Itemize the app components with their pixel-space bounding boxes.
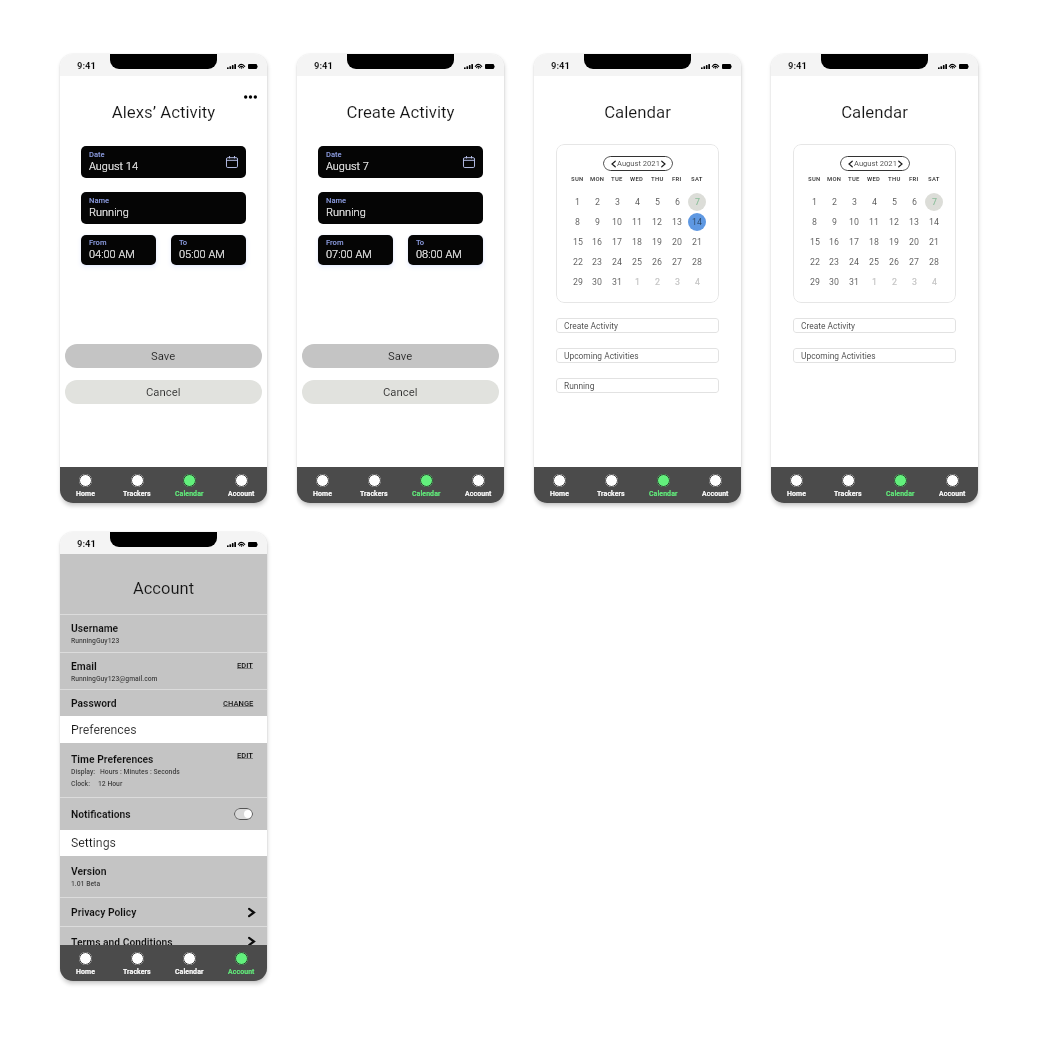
button[interactable]: 25: [864, 252, 884, 272]
button[interactable]: 14: [687, 212, 707, 232]
button[interactable]: Cancel: [302, 380, 499, 404]
button[interactable]: 4: [864, 192, 884, 212]
button[interactable]: Password: [60, 690, 267, 716]
button[interactable]: 7: [924, 192, 944, 212]
button[interactable]: 13: [667, 212, 687, 232]
button[interactable]: Trackers: [348, 467, 400, 503]
button[interactable]: From: [81, 235, 156, 265]
button[interactable]: Home: [60, 467, 111, 503]
button[interactable]: Trackers: [585, 467, 637, 503]
button[interactable]: 18: [864, 232, 884, 252]
button[interactable]: 9: [824, 212, 844, 232]
button[interactable]: 28: [924, 252, 944, 272]
button[interactable]: Username: [60, 615, 267, 652]
button[interactable]: 20: [904, 232, 924, 252]
button[interactable]: August 2021: [603, 156, 673, 171]
button[interactable]: 2: [824, 192, 844, 212]
button[interactable]: 19: [647, 232, 667, 252]
button[interactable]: 17: [844, 232, 864, 252]
button[interactable]: Name: [81, 192, 246, 224]
button[interactable]: 3: [607, 192, 627, 212]
button[interactable]: 22: [568, 252, 587, 272]
button[interactable]: 23: [587, 252, 607, 272]
button[interactable]: Account: [452, 467, 504, 503]
button[interactable]: 31: [607, 272, 627, 292]
button[interactable]: 1: [805, 192, 824, 212]
button[interactable]: Name: [318, 192, 483, 224]
button[interactable]: 24: [844, 252, 864, 272]
button[interactable]: 31: [844, 272, 864, 292]
button[interactable]: Upcoming Activities: [793, 348, 956, 363]
button[interactable]: Trackers: [111, 467, 163, 503]
button[interactable]: 9: [587, 212, 607, 232]
button[interactable]: 6: [904, 192, 924, 212]
button[interactable]: 10: [844, 212, 864, 232]
button[interactable]: 3: [667, 272, 687, 292]
button[interactable]: 29: [805, 272, 824, 292]
button[interactable]: Trackers: [822, 467, 874, 503]
button[interactable]: 16: [587, 232, 607, 252]
button[interactable]: 4: [627, 192, 647, 212]
button[interactable]: Account: [926, 467, 978, 503]
button[interactable]: Save: [65, 344, 262, 368]
button[interactable]: 3: [844, 192, 864, 212]
button[interactable]: 19: [884, 232, 904, 252]
button[interactable]: Calendar: [400, 467, 452, 503]
button[interactable]: Version: [60, 856, 267, 897]
button[interactable]: 29: [568, 272, 587, 292]
button[interactable]: 1: [627, 272, 647, 292]
button[interactable]: Create Activity: [556, 318, 719, 333]
button[interactable]: Time Preferences: [60, 743, 267, 797]
button[interactable]: Calendar: [163, 467, 215, 503]
button[interactable]: 20: [667, 232, 687, 252]
button[interactable]: 10: [607, 212, 627, 232]
button[interactable]: 17: [607, 232, 627, 252]
button[interactable]: 5: [647, 192, 667, 212]
button[interactable]: 18: [627, 232, 647, 252]
button[interactable]: Save: [302, 344, 499, 368]
button[interactable]: 15: [568, 232, 587, 252]
button[interactable]: Home: [534, 467, 585, 503]
button[interactable]: Notifications toggle: [234, 808, 253, 820]
button[interactable]: Trackers: [111, 945, 163, 981]
button[interactable]: August 2021: [840, 156, 910, 171]
button[interactable]: 21: [687, 232, 707, 252]
button[interactable]: From: [318, 235, 393, 265]
button[interactable]: Email: [60, 653, 267, 689]
button[interactable]: 12: [884, 212, 904, 232]
button[interactable]: Home: [771, 467, 822, 503]
button[interactable]: 2: [884, 272, 904, 292]
button[interactable]: Home: [297, 467, 348, 503]
button[interactable]: 12: [647, 212, 667, 232]
button[interactable]: 13: [904, 212, 924, 232]
button[interactable]: Running: [556, 378, 719, 393]
button[interactable]: 1: [864, 272, 884, 292]
button[interactable]: Terms and Conditions: [60, 927, 267, 956]
button[interactable]: More options: [240, 91, 260, 103]
button[interactable]: 24: [607, 252, 627, 272]
button[interactable]: 23: [824, 252, 844, 272]
button[interactable]: Calendar: [163, 945, 215, 981]
button[interactable]: 14: [924, 212, 944, 232]
button[interactable]: Preferences: [60, 716, 267, 743]
button[interactable]: 5: [884, 192, 904, 212]
button[interactable]: 26: [647, 252, 667, 272]
button[interactable]: 4: [687, 272, 707, 292]
button[interactable]: 16: [824, 232, 844, 252]
button[interactable]: Notifications: [60, 798, 267, 830]
button[interactable]: Home: [60, 945, 111, 981]
button[interactable]: 2: [647, 272, 667, 292]
button[interactable]: Account: [215, 467, 267, 503]
button[interactable]: 28: [687, 252, 707, 272]
button[interactable]: 4: [924, 272, 944, 292]
button[interactable]: 11: [864, 212, 884, 232]
button[interactable]: 26: [884, 252, 904, 272]
button[interactable]: 6: [667, 192, 687, 212]
button[interactable]: 11: [627, 212, 647, 232]
button[interactable]: 22: [805, 252, 824, 272]
button[interactable]: 25: [627, 252, 647, 272]
button[interactable]: 30: [587, 272, 607, 292]
button[interactable]: 15: [805, 232, 824, 252]
button[interactable]: 3: [904, 272, 924, 292]
button[interactable]: Account: [689, 467, 741, 503]
